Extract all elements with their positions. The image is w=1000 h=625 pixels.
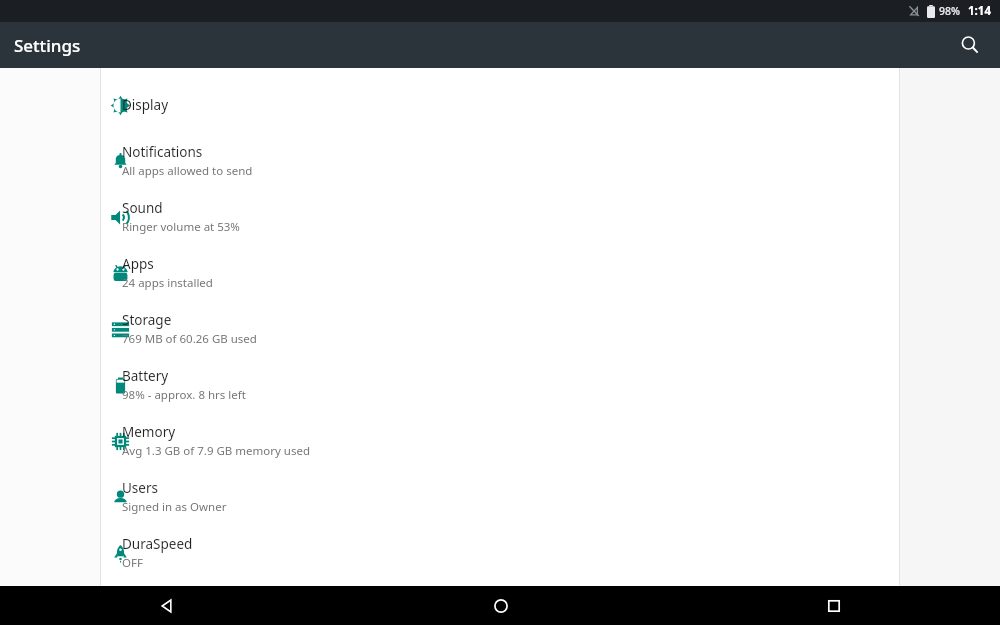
- staticText: Ringer volume at 53%: [122, 219, 240, 235]
- button[interactable]: Display: [0, 77, 1000, 133]
- button[interactable]: Back: [0, 586, 334, 625]
- staticText: Settings: [14, 34, 81, 57]
- staticText: 98% - approx. 8 hrs left: [122, 387, 246, 403]
- staticText: 98%: [939, 4, 960, 18]
- staticText: Users: [122, 479, 158, 497]
- staticText: 24 apps installed: [122, 275, 213, 291]
- button[interactable]: Home: [334, 586, 667, 625]
- staticText: OFF: [122, 555, 143, 571]
- button[interactable]: Notifications: [0, 133, 1000, 189]
- button[interactable]: Recent apps: [667, 586, 1000, 625]
- staticText: Battery: [122, 367, 169, 385]
- button[interactable]: Users: [0, 469, 1000, 525]
- button[interactable]: DuraSpeed: [0, 525, 1000, 581]
- staticText: DuraSpeed: [122, 535, 193, 553]
- staticText: Signed in as Owner: [122, 499, 227, 515]
- staticText: Sound: [122, 199, 163, 217]
- staticText: Memory: [122, 423, 176, 441]
- button[interactable]: Battery: [0, 357, 1000, 413]
- staticText: Storage: [122, 311, 172, 329]
- staticText: Avg 1.3 GB of 7.9 GB memory used: [122, 443, 311, 459]
- staticText: Apps: [122, 255, 154, 273]
- button[interactable]: Storage: [0, 301, 1000, 357]
- staticText: Notifications: [122, 143, 203, 161]
- button[interactable]: Search: [948, 23, 992, 67]
- button[interactable]: Sound: [0, 189, 1000, 245]
- staticText: 1:14: [968, 3, 991, 19]
- staticText: Display: [122, 96, 169, 114]
- button[interactable]: Apps: [0, 245, 1000, 301]
- button[interactable]: Memory: [0, 413, 1000, 469]
- staticText: All apps allowed to send: [122, 163, 253, 179]
- staticText: 769 MB of 60.26 GB used: [122, 331, 257, 347]
